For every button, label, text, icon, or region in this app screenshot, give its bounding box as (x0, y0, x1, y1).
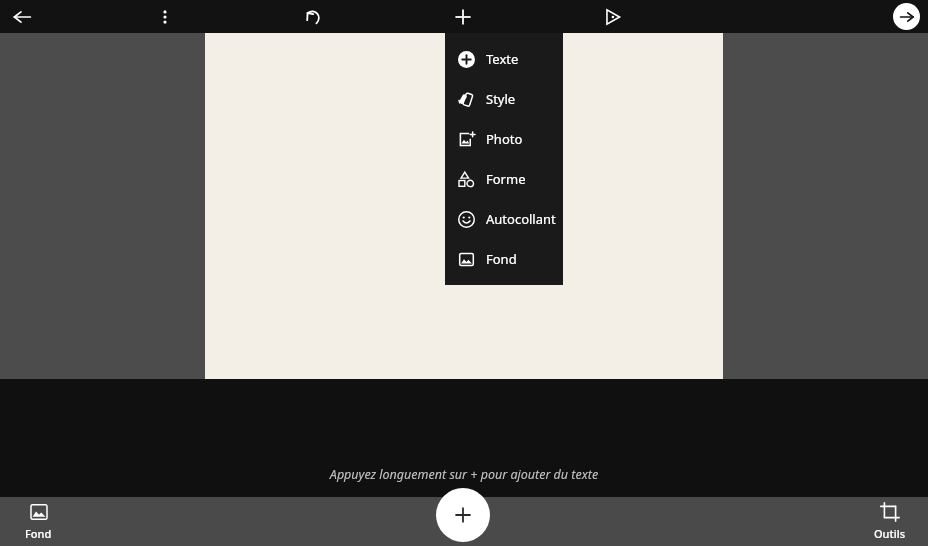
button[interactable]: More options (145, 0, 185, 33)
button[interactable]: Fond (445, 239, 563, 279)
staticText: Outils (874, 526, 906, 541)
button[interactable]: Outils (852, 497, 928, 546)
button[interactable]: Undo (292, 0, 336, 33)
button[interactable]: Add element (436, 488, 490, 542)
button[interactable]: Forme (445, 159, 563, 199)
staticText: Photo (486, 130, 523, 148)
staticText: Forme (486, 170, 526, 188)
staticText: Fond (486, 250, 517, 268)
button[interactable]: Play (590, 0, 634, 33)
staticText: Texte (486, 50, 519, 68)
button[interactable]: Add (441, 0, 485, 33)
staticText: Appuyez longuement sur + pour ajouter du… (0, 466, 928, 483)
staticText: Style (486, 90, 516, 108)
button[interactable]: Autocollant (445, 199, 563, 239)
staticText: Autocollant (486, 210, 556, 228)
staticText: Fond (25, 526, 52, 541)
button[interactable]: Photo (445, 119, 563, 159)
button[interactable]: Next (884, 0, 928, 33)
button[interactable]: Style (445, 79, 563, 119)
button[interactable]: Back (0, 0, 44, 33)
button[interactable]: Fond (0, 497, 76, 546)
button[interactable]: Texte (445, 39, 563, 79)
